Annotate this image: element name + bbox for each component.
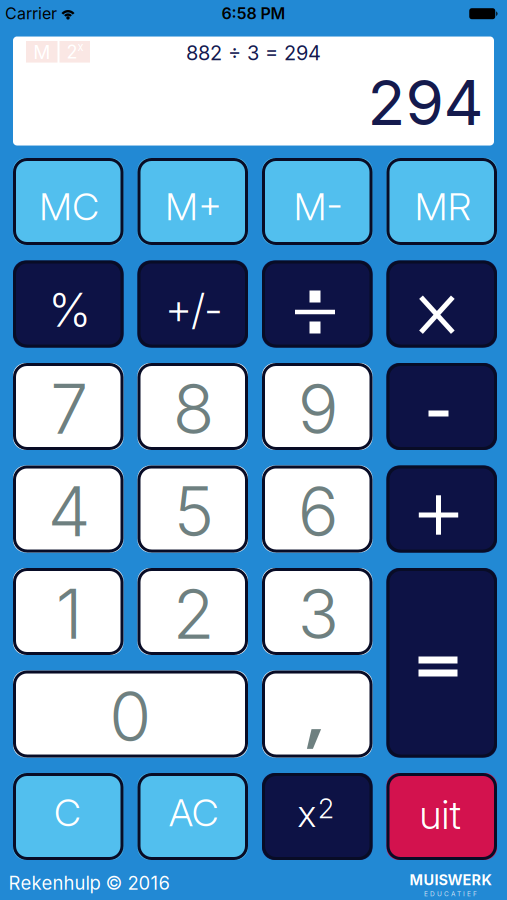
staticText: 6:58 PM (221, 4, 285, 23)
staticText: Carrier (5, 4, 57, 23)
staticText: 3 (298, 573, 339, 655)
staticText: 9 (298, 368, 339, 450)
staticText: uit (419, 790, 460, 839)
staticText: 5 (174, 470, 214, 553)
staticText: M+ (165, 183, 222, 229)
staticText: 4 (48, 470, 91, 553)
staticText: 0 (109, 675, 151, 758)
staticText: +/- (166, 284, 222, 334)
staticText: 2 (318, 792, 334, 825)
staticText: 8 (173, 368, 215, 450)
staticText: MC (39, 183, 99, 229)
staticText: E D U C A T I E F (424, 890, 477, 898)
staticText: 2 (66, 41, 77, 63)
staticText: AC (169, 789, 219, 835)
staticText: 882 ÷ 3 = 294 (186, 41, 321, 65)
staticText: 294 (367, 65, 483, 140)
staticText: M- (294, 183, 343, 229)
staticText: MUISWERK (409, 871, 491, 889)
staticText: x (77, 40, 83, 54)
staticText: Rekenhulp © 2016 (8, 872, 169, 894)
staticText: 6 (298, 470, 339, 553)
staticText: % (48, 282, 91, 338)
staticText: 2 (173, 573, 215, 655)
staticText: x (297, 791, 316, 836)
staticText: MR (415, 183, 471, 229)
staticText: 7 (50, 368, 88, 450)
staticText: 1 (56, 573, 83, 655)
staticText: M (33, 40, 50, 63)
staticText: C (54, 789, 81, 835)
